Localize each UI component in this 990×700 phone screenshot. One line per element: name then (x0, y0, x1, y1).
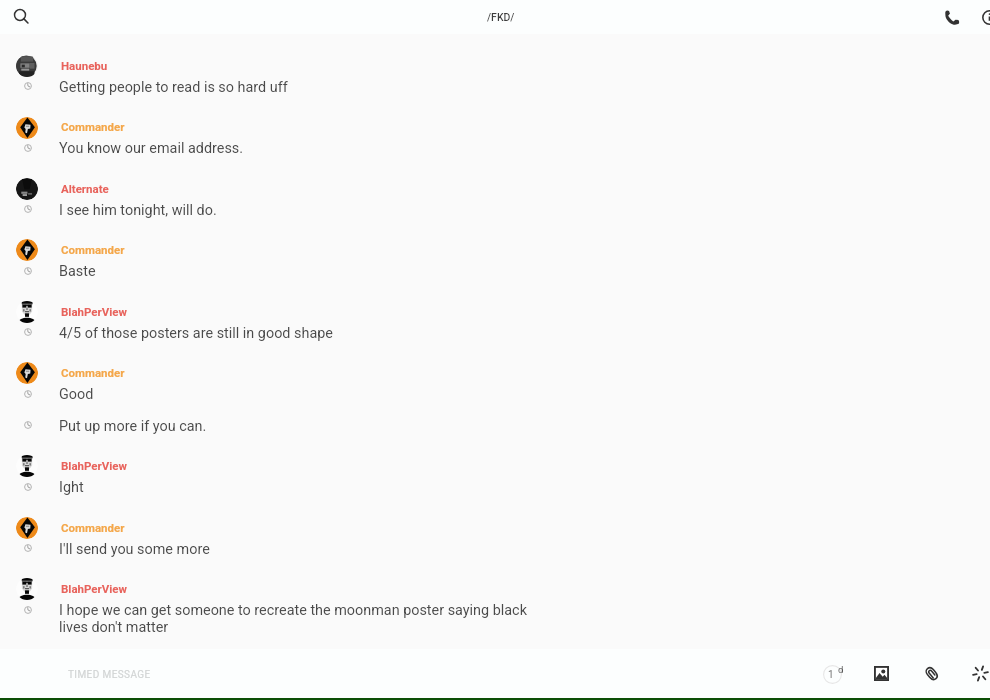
button[interactable]: Commander (0, 361, 990, 408)
button[interactable]: BlahPerView (0, 454, 990, 501)
staticText: TIMED MESSAGE (68, 669, 151, 681)
staticText: You know our email address. (59, 140, 539, 157)
staticText: Alternate (61, 182, 109, 195)
button[interactable]: Attach file (914, 656, 949, 691)
button[interactable]: BlahPerView (0, 300, 990, 347)
staticText: Commander (61, 366, 125, 379)
staticText: Commander (61, 120, 125, 133)
staticText: 1 (828, 669, 834, 681)
staticText: I'll send you some more (59, 541, 539, 558)
button[interactable]: Commander (0, 238, 990, 285)
staticText: Put up more if you can. (59, 418, 539, 435)
staticText: Baste (59, 263, 539, 280)
staticText: Commander (61, 243, 125, 256)
button[interactable]: Haunebu (0, 54, 990, 101)
staticText: Getting people to read is so hard uff (59, 79, 539, 96)
button[interactable]: BlahPerView (0, 577, 990, 642)
staticText: BlahPerView (61, 582, 127, 595)
staticText: Ight (59, 479, 539, 496)
button[interactable]: Message timer 1 day (814, 656, 850, 692)
staticText: I see him tonight, will do. (59, 202, 539, 219)
staticText: BlahPerView (61, 459, 127, 472)
staticText: 4/5 of those posters are still in good s… (59, 325, 539, 342)
staticText: I hope we can get someone to recreate th… (59, 602, 539, 636)
staticText: Good (59, 386, 539, 403)
staticText: d (838, 664, 844, 675)
button[interactable]: Call (937, 3, 965, 31)
button[interactable]: Put up more if you can. (0, 415, 990, 440)
staticText: Haunebu (61, 59, 108, 72)
staticText: Commander (61, 521, 125, 534)
button[interactable]: Commander (0, 516, 990, 563)
button[interactable]: Effects (963, 656, 990, 691)
staticText: BlahPerView (61, 305, 127, 318)
button[interactable]: Info (975, 3, 990, 31)
button[interactable]: Add image (864, 656, 899, 691)
staticText: /FKD/ (487, 11, 515, 23)
button[interactable]: Alternate (0, 177, 990, 224)
button[interactable]: Search (7, 2, 36, 31)
button[interactable]: Commander (0, 115, 990, 162)
